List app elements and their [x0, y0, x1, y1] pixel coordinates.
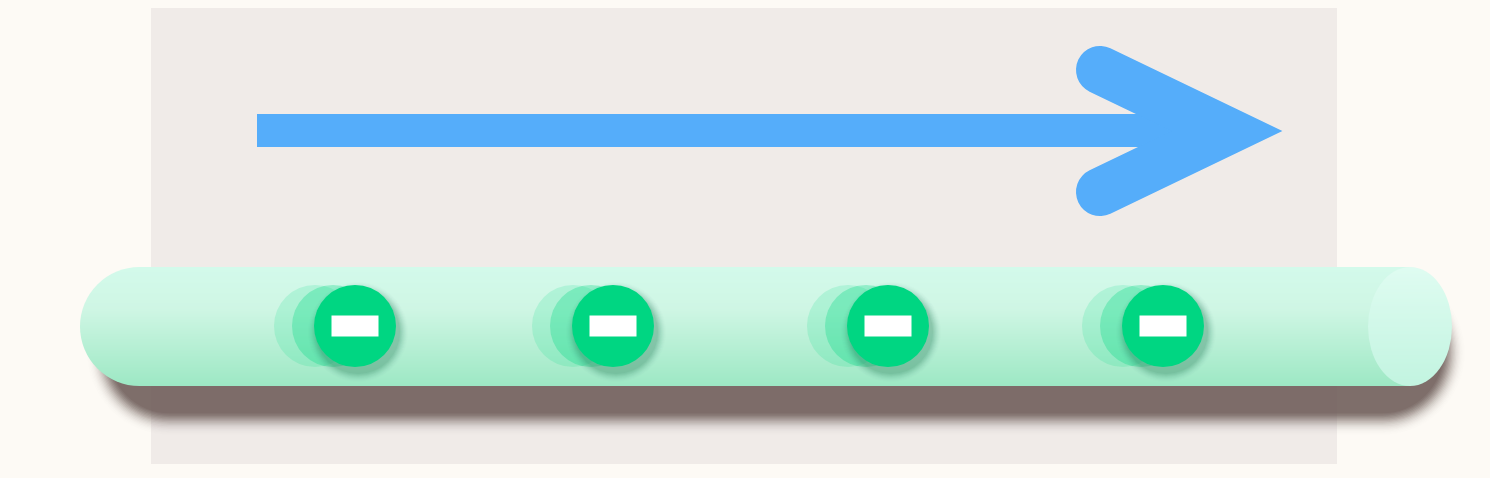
button[interactable]: Pipeline diagram	[0, 0, 1490, 478]
